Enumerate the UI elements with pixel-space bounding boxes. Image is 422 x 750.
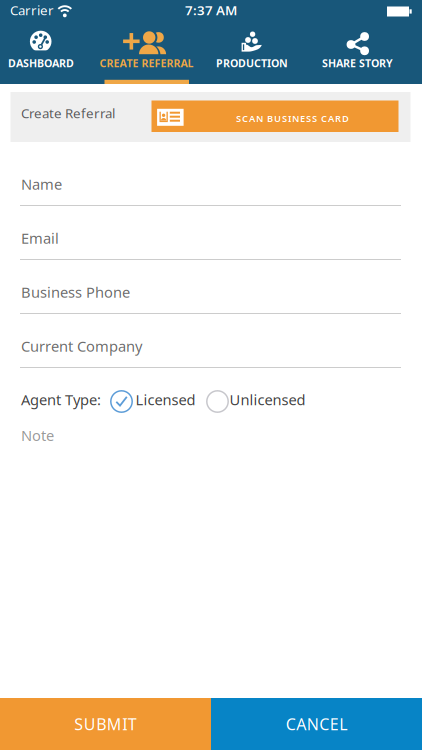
staticText: Current Company (21, 336, 142, 356)
button[interactable]: DASHBOARD (0, 0, 106, 80)
staticText: CREATE REFERRAL (99, 56, 193, 70)
button[interactable]: Name (20, 174, 401, 206)
staticText: SUBMIT (74, 713, 137, 735)
button[interactable]: Note (20, 425, 401, 449)
staticText: Name (21, 174, 62, 194)
button[interactable]: Licensed (110, 390, 193, 413)
staticText: Business Phone (21, 282, 130, 302)
staticText: Carrier (10, 1, 54, 19)
button[interactable]: CANCEL (211, 698, 422, 750)
staticText: CANCEL (286, 713, 347, 735)
staticText: SHARE STORY (322, 56, 393, 70)
staticText: Note (21, 425, 54, 445)
button[interactable]: Unlicensed (206, 390, 301, 413)
staticText: DASHBOARD (8, 56, 74, 70)
button[interactable]: Current Company (20, 336, 401, 368)
button[interactable]: CREATE REFERRAL (105, 0, 211, 80)
button[interactable]: SCAN BUSINESS CARD (151, 100, 398, 132)
button[interactable]: Email (20, 228, 401, 260)
staticText: PRODUCTION (216, 56, 288, 70)
button[interactable]: PRODUCTION (211, 0, 317, 80)
button[interactable]: SUBMIT (0, 698, 211, 750)
button[interactable]: SHARE STORY (316, 0, 422, 80)
staticText: Agent Type: (21, 390, 101, 409)
staticText: Create Referral (21, 104, 115, 122)
staticText: SCAN BUSINESS CARD (236, 112, 349, 125)
staticText: Licensed (135, 390, 195, 409)
staticText: 7:37 AM (185, 1, 237, 19)
staticText: Unlicensed (229, 390, 305, 409)
staticText: Email (21, 228, 59, 248)
button[interactable]: Business Phone (20, 282, 401, 314)
